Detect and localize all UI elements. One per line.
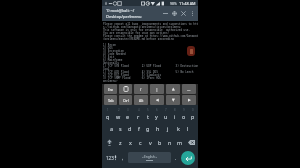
button[interactable]: j [163, 121, 173, 135]
button[interactable]: 3 [123, 106, 133, 121]
staticText: 3) Encryption [103, 49, 124, 52]
staticText: x [129, 139, 132, 146]
staticText: ▸ [155, 155, 157, 159]
staticText: 4) Code Needed [103, 52, 126, 55]
staticText: /perlmenu/master/README.md before procee… [103, 37, 174, 40]
staticText: 5 [147, 108, 149, 112]
staticText: ◀ [156, 98, 159, 102]
button[interactable]: g [143, 121, 153, 135]
button[interactable]: h [153, 121, 163, 135]
button[interactable]: Tab [104, 95, 117, 105]
button[interactable]: 8 [170, 106, 179, 121]
button[interactable]: Close [179, 6, 188, 21]
staticText: ▼ [172, 98, 175, 102]
staticText: This software is only for responsible, a… [103, 28, 191, 31]
button[interactable]: / [134, 84, 148, 94]
staticText: 3) TCP SNMP Flood 6) IPsec HOL [103, 76, 162, 79]
button[interactable]: 0 [188, 106, 197, 121]
button[interactable]: Minimize [161, 6, 170, 21]
button[interactable]: x [125, 135, 135, 149]
button[interactable]: 6 [152, 106, 161, 121]
button[interactable]: n [165, 135, 175, 149]
button[interactable]: ◂ [128, 152, 171, 163]
button[interactable]: f [134, 121, 143, 135]
staticText: Optionally [103, 61, 120, 64]
button[interactable]: Enter [181, 151, 195, 165]
button[interactable]: — [182, 84, 196, 94]
staticText: p [191, 113, 195, 120]
button[interactable]: , [118, 149, 128, 166]
button[interactable]: a [107, 121, 116, 135]
button[interactable]: ▲ [166, 84, 180, 94]
staticText: u [164, 113, 168, 120]
staticText: 11:48 AM [179, 1, 196, 6]
staticText: ▶ [188, 98, 191, 102]
button[interactable]: l [183, 121, 193, 135]
staticText: 8 [174, 108, 176, 112]
button[interactable]: 7 [161, 106, 170, 121]
staticText: s [119, 125, 122, 132]
staticText: perlmenu> [103, 79, 118, 82]
button[interactable]: b [155, 135, 165, 149]
button[interactable]: z [115, 135, 125, 149]
staticText: 3 [127, 108, 129, 112]
staticText: i [174, 113, 176, 120]
button[interactable]: d [125, 121, 134, 135]
staticText: Desktop/perlmenu [106, 14, 142, 19]
button[interactable]: v [145, 135, 155, 149]
button[interactable]: Shift [103, 135, 115, 149]
staticText: e [126, 113, 130, 120]
button[interactable]: 123 [105, 149, 118, 166]
button[interactable]: Alt [134, 95, 148, 105]
button[interactable]: More options [188, 6, 197, 21]
button[interactable]: Esc [104, 84, 117, 94]
button[interactable]: Backspace [185, 135, 197, 149]
staticText: 1) Recon [103, 43, 116, 46]
staticText: l [187, 125, 189, 132]
staticText: m [177, 139, 183, 146]
button[interactable]: k [173, 121, 183, 135]
staticText: 2 [118, 108, 120, 112]
button[interactable]: ◀ [150, 95, 164, 105]
staticText: w [116, 113, 121, 120]
staticText: h [156, 125, 160, 132]
button[interactable]: 1 [103, 106, 113, 121]
button[interactable]: Ctrl [119, 95, 132, 105]
button[interactable]: 2 [113, 106, 123, 121]
staticText: 4 [138, 108, 140, 112]
staticText: a [110, 125, 114, 132]
staticText: 2) TCP RST Flood 5) Slowloris [103, 73, 162, 76]
staticText: g [146, 125, 150, 132]
staticText: o [182, 113, 186, 120]
staticText: — [187, 87, 191, 92]
staticText: ▲ [172, 87, 175, 91]
staticText: t [147, 113, 149, 120]
staticText: Please report all bugs, improvements and… [103, 22, 198, 25]
button[interactable]: 4 [133, 106, 143, 121]
staticText: k [177, 125, 180, 132]
staticText: 1) TCP SYN Flood 2) UDP Flood 3) Destruc… [103, 64, 198, 67]
staticText: You are responsible for your own actions… [103, 31, 170, 34]
staticText: d [128, 125, 132, 132]
staticText: Alt [139, 98, 144, 103]
staticText: Please consult the readme at https://www… [103, 34, 198, 37]
staticText: b [158, 139, 162, 146]
staticText: 2) DOS [103, 46, 113, 49]
staticText: r [137, 113, 140, 120]
button[interactable]: ▶ [182, 95, 196, 105]
button[interactable]: m [175, 135, 185, 149]
button[interactable]: ▼ [166, 95, 180, 105]
button[interactable]: 5 [143, 106, 152, 121]
button[interactable]: | [150, 84, 164, 94]
button[interactable]: Toggle fullscreen [170, 6, 179, 21]
button[interactable]: Paste [119, 84, 132, 94]
button[interactable]: c [135, 135, 145, 149]
staticText: 1) TCP ACK Flood 4) SSL DOS 5) No Leech [103, 70, 194, 73]
staticText: Tab [108, 98, 114, 103]
staticText: 98% [170, 1, 177, 6]
staticText: . [175, 155, 177, 161]
button[interactable]: 9 [179, 106, 188, 121]
button[interactable]: s [116, 121, 125, 135]
staticText: 1 [107, 108, 109, 112]
button[interactable]: . [171, 149, 181, 166]
